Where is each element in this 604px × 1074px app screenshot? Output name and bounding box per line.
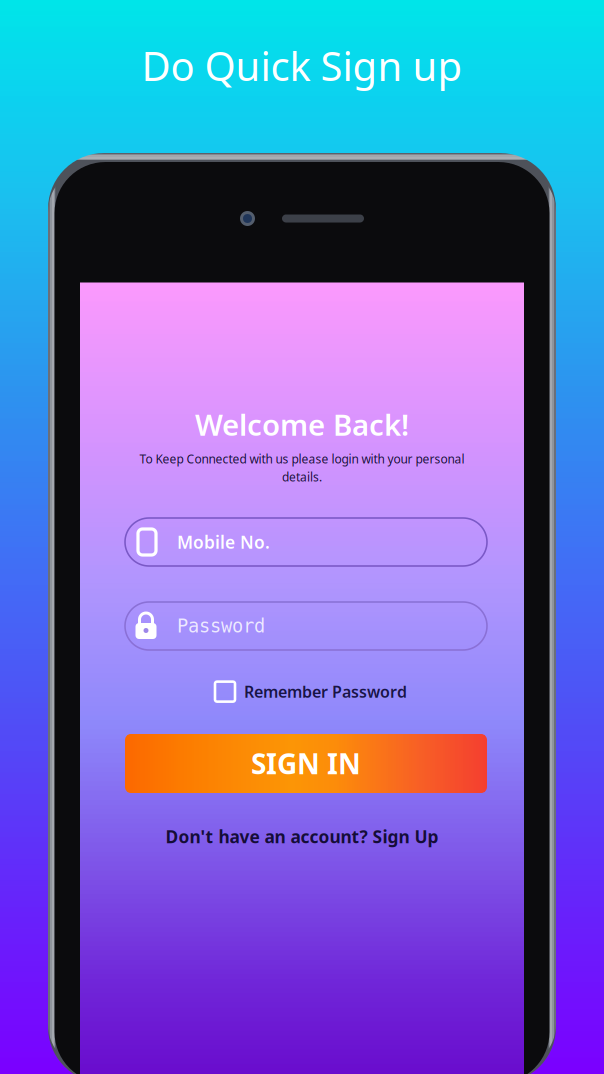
staticText: Welcome Back!	[195, 405, 409, 444]
staticText: Mobile No.	[177, 530, 270, 553]
staticText: Do Quick Sign up	[141, 39, 462, 92]
button[interactable]: Remember Password	[215, 677, 407, 706]
staticText: details.	[282, 469, 322, 485]
staticText: To Keep Connected with us please login w…	[139, 451, 464, 467]
staticText: Remember Password	[244, 681, 407, 702]
button[interactable]: Password	[125, 602, 487, 650]
button[interactable]: Mobile No.	[125, 518, 487, 566]
staticText: Password	[177, 615, 265, 637]
staticText: Don't have an account? Sign Up	[165, 825, 438, 848]
button[interactable]: SIGN IN	[125, 734, 487, 793]
staticText: SIGN IN	[251, 745, 361, 782]
button[interactable]: Don't have an account? Sign Up	[165, 819, 438, 854]
